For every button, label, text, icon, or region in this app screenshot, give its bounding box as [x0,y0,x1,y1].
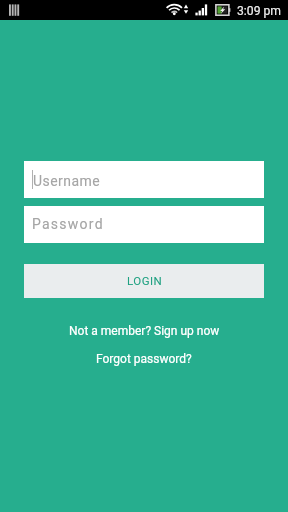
staticText: LOGIN [127,274,163,287]
button[interactable]: Password [24,206,264,243]
button[interactable]: LOGIN [24,264,264,298]
button[interactable]: Username [24,161,264,198]
button[interactable]: Not a member? Sign up now [0,320,288,342]
button[interactable]: Forgot password? [0,348,288,370]
staticText: Not a member? Sign up now [69,324,220,338]
staticText: Forgot password? [96,352,192,366]
staticText: 3:09 pm [237,4,282,18]
staticText: Password [32,216,104,232]
staticText: Username [33,173,101,189]
other: Status icons: storage, Wi-Fi, signal, ba… [0,0,288,20]
